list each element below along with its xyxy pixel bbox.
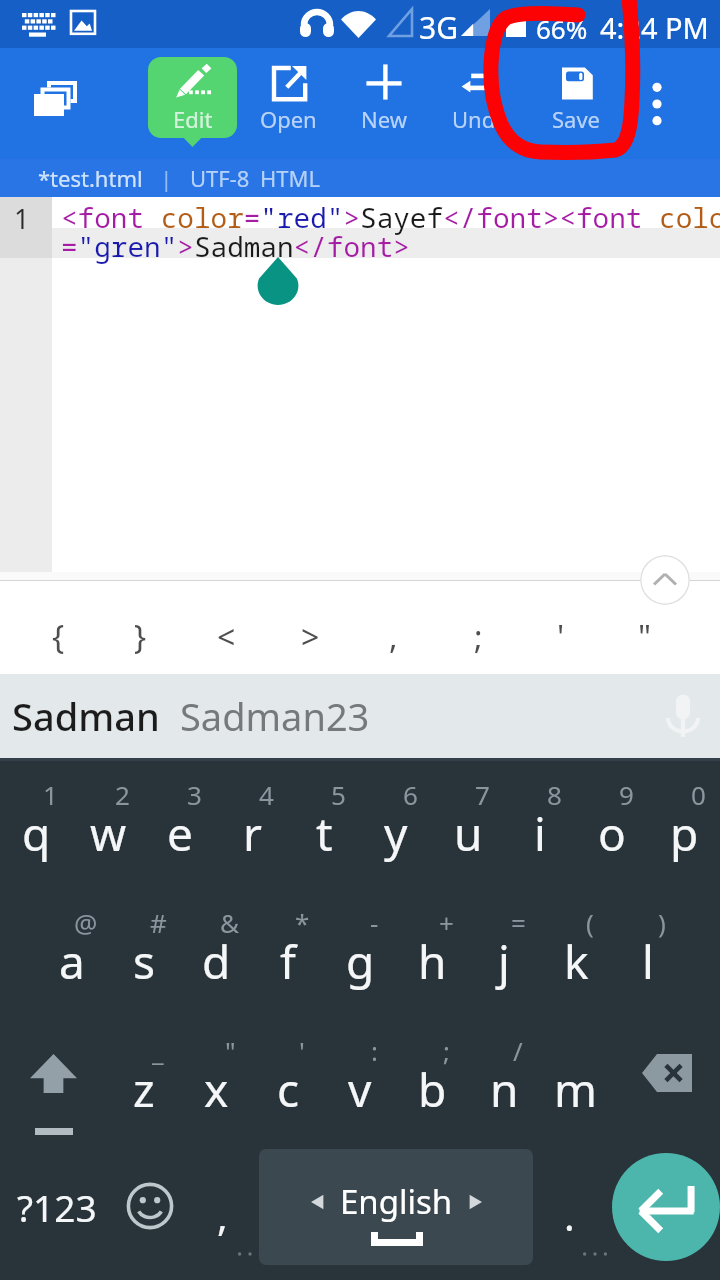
staticText: }	[134, 615, 147, 659]
button[interactable]: Sadman23	[172, 674, 384, 758]
staticText: HTML	[260, 163, 321, 193]
staticText: 8	[547, 777, 562, 812]
staticText: i	[534, 802, 546, 865]
button[interactable]: Emoji	[114, 1142, 186, 1280]
button[interactable]: '	[520, 599, 602, 674]
button[interactable]: 2	[72, 758, 144, 886]
button[interactable]: ,	[352, 599, 434, 674]
staticText: l	[642, 930, 654, 993]
staticText: 9	[619, 777, 634, 812]
staticText: 1	[14, 200, 30, 237]
button[interactable]: >	[269, 599, 351, 674]
button[interactable]: "	[180, 1014, 252, 1142]
staticText: .	[564, 1188, 575, 1242]
staticText: /	[513, 1033, 523, 1068]
staticText: 4:24 PM	[600, 8, 709, 47]
button[interactable]: {	[17, 599, 99, 674]
button[interactable]: More options	[637, 78, 677, 130]
button[interactable]: Tabs	[34, 81, 80, 121]
button[interactable]: ;	[396, 1014, 468, 1142]
staticText: f	[280, 930, 296, 993]
staticText: New	[361, 104, 407, 134]
staticText: 3G	[419, 7, 458, 48]
button[interactable]: m	[540, 1014, 612, 1142]
staticText: *test.html	[38, 163, 143, 193]
staticText: s	[133, 930, 156, 993]
button[interactable]: 4	[216, 758, 288, 886]
button[interactable]: .	[532, 1142, 606, 1280]
button[interactable]: /	[468, 1014, 540, 1142]
button[interactable]: *	[252, 886, 324, 1014]
staticText: d	[202, 930, 231, 993]
staticText: -	[370, 905, 379, 940]
staticText: n	[490, 1058, 519, 1121]
button[interactable]: ,	[186, 1142, 258, 1280]
staticText: b	[418, 1058, 447, 1121]
button[interactable]: New	[336, 48, 432, 159]
staticText: ;	[474, 615, 483, 659]
staticText: Save	[552, 104, 601, 134]
staticText: Open	[260, 104, 317, 134]
staticText: English	[340, 1179, 453, 1224]
button[interactable]: ;	[437, 599, 519, 674]
button[interactable]: Voice input	[652, 685, 714, 747]
staticText: @	[74, 905, 98, 940]
staticText: 0	[691, 777, 706, 812]
button[interactable]: }	[99, 599, 181, 674]
button[interactable]: Space	[259, 1149, 533, 1265]
staticText: k	[564, 930, 589, 993]
button[interactable]: _	[108, 1014, 180, 1142]
button[interactable]: -	[324, 886, 396, 1014]
staticText: 6	[403, 777, 418, 812]
staticText: '	[557, 615, 565, 659]
button[interactable]: (	[540, 886, 612, 1014]
staticText: a	[59, 930, 85, 993]
button[interactable]: Undo	[432, 48, 528, 159]
button[interactable]: &	[180, 886, 252, 1014]
button[interactable]: '	[252, 1014, 324, 1142]
staticText: "	[225, 1033, 236, 1068]
staticText: h	[418, 930, 447, 993]
staticText: "	[638, 615, 652, 659]
staticText: 2	[115, 777, 130, 812]
staticText: >	[301, 615, 320, 659]
button[interactable]: :	[324, 1014, 396, 1142]
button[interactable]: #	[108, 886, 180, 1014]
staticText: 66%	[536, 11, 588, 46]
button[interactable]: @	[36, 886, 108, 1014]
button[interactable]: 1	[0, 758, 72, 886]
button[interactable]: )	[612, 886, 684, 1014]
staticText: &	[220, 905, 240, 940]
button[interactable]: Shift	[0, 1014, 108, 1142]
button[interactable]: =	[468, 886, 540, 1014]
staticText: =	[511, 905, 526, 940]
button[interactable]: Enter	[606, 1142, 720, 1280]
button[interactable]: 9	[576, 758, 648, 886]
staticText: ;	[443, 1033, 450, 1068]
staticText: <font color="red">Sayef</font><font colo…	[61, 198, 720, 265]
button[interactable]: Save	[528, 48, 624, 159]
button[interactable]: +	[396, 886, 468, 1014]
staticText: UTF-8	[190, 163, 250, 193]
staticText: q	[22, 802, 51, 865]
staticText: j	[498, 930, 510, 993]
button[interactable]: Open	[240, 48, 336, 159]
staticText: o	[598, 802, 626, 865]
button[interactable]: 6	[360, 758, 432, 886]
button[interactable]: "	[604, 599, 686, 674]
button[interactable]: 7	[432, 758, 504, 886]
button[interactable]: 0	[648, 758, 720, 886]
button[interactable]: 3	[144, 758, 216, 886]
button[interactable]: Backspace	[612, 1014, 720, 1142]
button[interactable]: 5	[288, 758, 360, 886]
staticText: |	[143, 163, 190, 193]
staticText: v	[348, 1058, 372, 1121]
button[interactable]: <	[185, 599, 267, 674]
staticText: ,	[217, 1188, 228, 1242]
button[interactable]: Sadman	[4, 674, 168, 758]
button[interactable]: Edit	[148, 57, 237, 155]
staticText: g	[346, 930, 375, 993]
button[interactable]: 8	[504, 758, 576, 886]
button[interactable]: ?123	[0, 1142, 114, 1280]
button[interactable]: Collapse keyboard	[640, 555, 690, 605]
